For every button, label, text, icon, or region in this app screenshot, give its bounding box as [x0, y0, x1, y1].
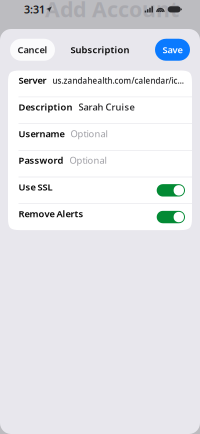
staticText: us.zandahealth.com/calendar/ical/7b… [52, 75, 184, 86]
staticText: Optional [70, 127, 107, 140]
button[interactable]: Description [8, 97, 192, 123]
staticText: Description [18, 101, 72, 113]
staticText: Save [162, 44, 182, 56]
button[interactable]: Use SSL [157, 184, 185, 196]
staticText: Add Account [45, 0, 179, 23]
button[interactable]: Cancel [10, 39, 55, 61]
staticText: Username [18, 127, 64, 140]
staticText: Subscription [70, 44, 129, 56]
button[interactable]: Username [8, 124, 192, 150]
staticText: Sarah Cruise [78, 101, 134, 113]
staticText: 3:31 [24, 2, 45, 16]
button[interactable]: Save [155, 39, 190, 61]
staticText: Server [18, 74, 46, 86]
staticText: Use SSL [18, 181, 52, 193]
staticText: Password [18, 154, 63, 166]
staticText: Remove Alerts [18, 207, 83, 220]
staticText: Optional [69, 154, 106, 166]
button[interactable]: Password [8, 151, 192, 177]
button[interactable]: Server [8, 70, 192, 97]
button[interactable]: Remove Alerts [157, 211, 185, 223]
staticText: Cancel [17, 44, 47, 56]
